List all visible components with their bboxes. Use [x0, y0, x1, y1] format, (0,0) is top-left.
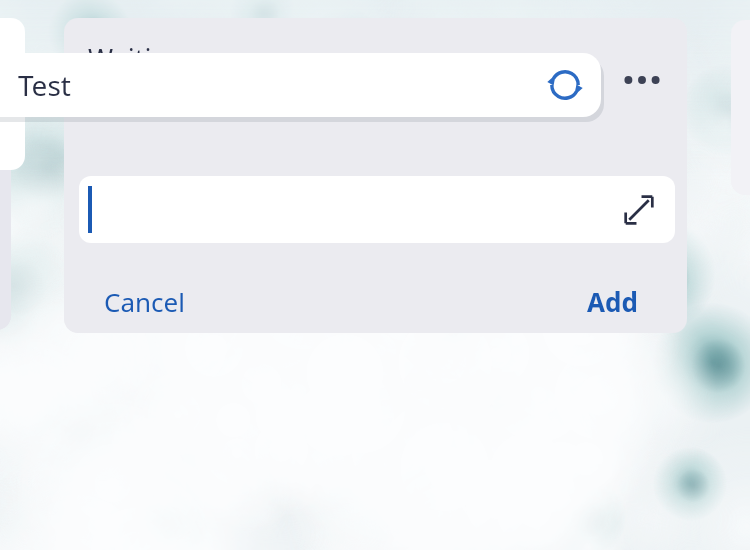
button[interactable]: Add	[581, 280, 644, 323]
staticText: Test	[18, 66, 71, 104]
button[interactable]: Expand	[79, 176, 675, 243]
button[interactable]: Expand	[617, 188, 661, 232]
staticText: Cancel	[104, 284, 185, 319]
staticText: Waiting	[88, 40, 185, 77]
button[interactable]: Cancel	[98, 280, 191, 323]
button[interactable]	[0, 18, 25, 170]
button[interactable]	[0, 18, 11, 330]
staticText: Add	[587, 284, 638, 319]
button[interactable]: Refresh	[539, 59, 591, 111]
button[interactable]: Test	[0, 53, 601, 117]
button[interactable]: More options	[618, 56, 666, 104]
